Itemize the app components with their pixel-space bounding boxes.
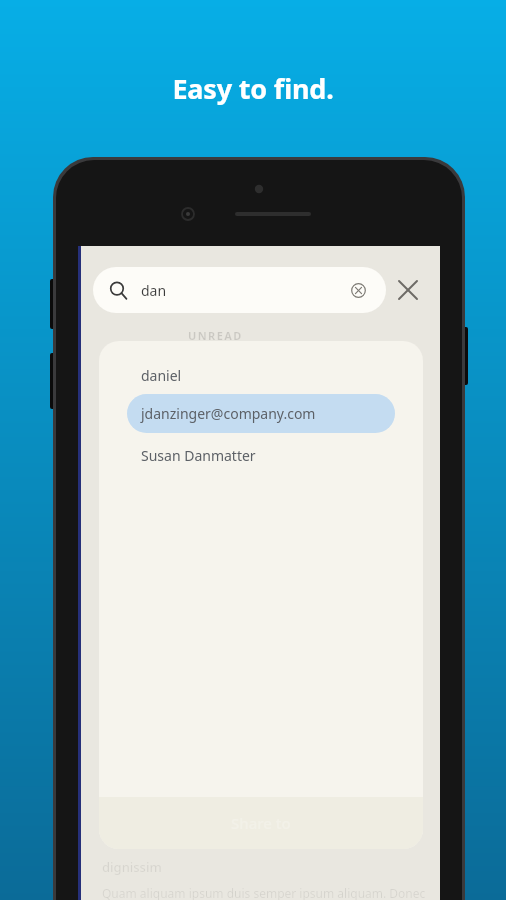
staticText: UNREAD (188, 328, 243, 343)
staticText: Easy to find. (0, 70, 506, 107)
staticText: dignissim (102, 858, 162, 876)
button[interactable]: Susan Danmatter (99, 433, 423, 477)
button[interactable]: Close search (386, 268, 430, 312)
button[interactable]: dan (93, 267, 386, 313)
staticText: daniel (141, 366, 182, 385)
staticText: jdanzinger@company.com (141, 404, 316, 423)
staticText: Susan Danmatter (141, 446, 256, 465)
button[interactable]: Clear search (346, 278, 370, 302)
button[interactable]: jdanzinger@company.com (127, 394, 395, 433)
staticText: Quam aliquam ipsum duis semper ipsum ali… (102, 885, 426, 900)
staticText: dan (141, 281, 167, 300)
button[interactable]: daniel (99, 357, 423, 394)
